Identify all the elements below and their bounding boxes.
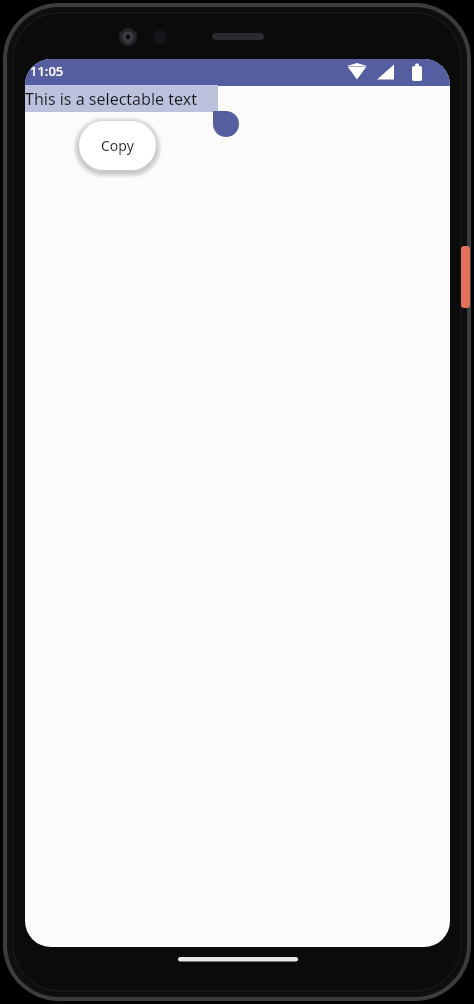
staticText: 11:05 — [30, 62, 64, 80]
button[interactable]: Selection handle — [212, 110, 240, 138]
staticText: Copy — [101, 136, 134, 155]
staticText: This is a selectable text — [25, 88, 197, 110]
button[interactable]: Copy — [79, 121, 156, 170]
button[interactable]: This is a selectable text — [25, 85, 218, 112]
button[interactable]: Power — [458, 246, 470, 308]
